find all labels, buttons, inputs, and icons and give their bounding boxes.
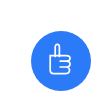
button[interactable]: Thumb up: [0, 0, 100, 100]
